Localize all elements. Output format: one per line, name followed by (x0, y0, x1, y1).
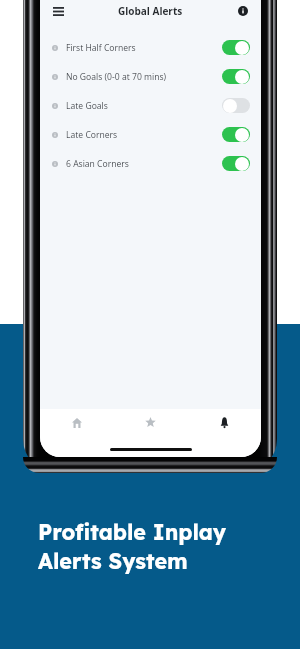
staticText: Late Goals (66, 100, 108, 112)
button[interactable]: Home (40, 409, 113, 436)
button[interactable]: Menu (47, 0, 69, 22)
button[interactable]: Enabled (222, 69, 250, 84)
staticText: No Goals (0-0 at 70 mins) (66, 71, 167, 83)
button[interactable]: Enabled (222, 40, 250, 55)
button[interactable]: No Goals (0-0 at 70 mins) (40, 62, 261, 91)
button[interactable]: Information (232, 0, 254, 22)
button[interactable]: First Half Corners (40, 33, 261, 62)
button[interactable]: Enabled (222, 156, 250, 171)
button[interactable]: Favourites (113, 409, 187, 436)
button[interactable]: Late Corners (40, 120, 261, 149)
staticText: First Half Corners (66, 42, 136, 54)
staticText: Profitable Inplay Alerts System (38, 518, 227, 574)
staticText: Global Alerts (118, 4, 183, 18)
button[interactable]: 6 Asian Corners (40, 149, 261, 178)
button[interactable]: Late Goals (40, 91, 261, 120)
staticText: Late Corners (66, 129, 118, 141)
button[interactable]: Alerts (187, 409, 261, 436)
staticText: 6 Asian Corners (66, 158, 129, 170)
button[interactable]: Enabled (222, 127, 250, 142)
button[interactable]: Disabled (222, 98, 250, 113)
